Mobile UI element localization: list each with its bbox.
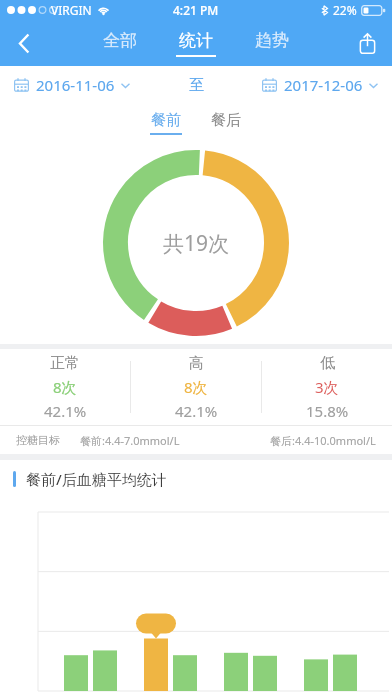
staticText: 2016-11-06 (36, 75, 115, 95)
button[interactable]: 趋势 (247, 28, 297, 59)
button[interactable]: 统计 (171, 28, 221, 59)
button[interactable]: 全部 (95, 28, 145, 59)
button[interactable]: 2017-12-06 (262, 69, 378, 101)
staticText: 42.1% (175, 401, 218, 421)
button[interactable]: 低 (262, 349, 392, 425)
button[interactable]: Share (342, 20, 392, 66)
staticText: VIRGIN (51, 2, 92, 18)
staticText: 8次 (53, 377, 77, 397)
staticText: 低 (320, 354, 335, 373)
button[interactable]: Back (0, 20, 48, 66)
staticText: 8次 (184, 377, 208, 397)
button[interactable]: 正常 (0, 349, 130, 425)
staticText: 餐后 (211, 111, 241, 130)
staticText: 22% (333, 2, 357, 18)
button[interactable]: 餐后 (204, 107, 248, 139)
staticText: 餐前:4.4-7.0mmol/L (80, 433, 180, 448)
staticText: 控糖目标 (16, 433, 60, 447)
button[interactable]: 餐前 (144, 107, 188, 139)
staticText: 正常 (50, 354, 80, 373)
staticText: 餐前 (151, 111, 181, 130)
staticText: 15.8% (306, 401, 349, 421)
staticText: 高 (189, 354, 204, 373)
button[interactable]: 2016-11-06 (14, 69, 130, 101)
staticText: 至 (189, 76, 204, 95)
button[interactable]: 高 (131, 349, 261, 425)
staticText: 餐后:4.4-10.0mmol/L (270, 433, 376, 448)
staticText: 趋势 (255, 30, 289, 51)
staticText: 3次 (315, 377, 339, 397)
staticText: 统计 (179, 30, 213, 51)
staticText: 2017-12-06 (284, 75, 363, 95)
staticText: 4:21 PM (173, 2, 219, 18)
staticText: 餐前/后血糖平均统计 (26, 469, 167, 489)
staticText: 42.1% (44, 401, 87, 421)
staticText: 全部 (103, 30, 137, 51)
staticText: 共19次 (163, 229, 230, 258)
